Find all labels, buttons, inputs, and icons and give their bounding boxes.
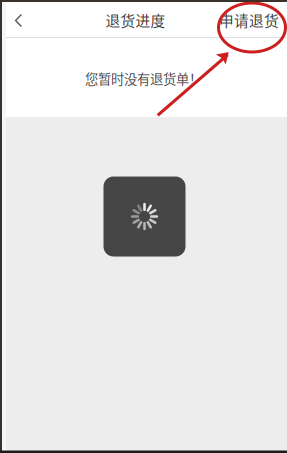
- button[interactable]: 申请退货: [207, 0, 287, 37]
- button[interactable]: 返回: [0, 0, 37, 37]
- staticText: 申请退货: [219, 9, 279, 31]
- staticText: 退货进度: [105, 9, 165, 31]
- staticText: 您暂时没有退货单！: [85, 69, 202, 88]
